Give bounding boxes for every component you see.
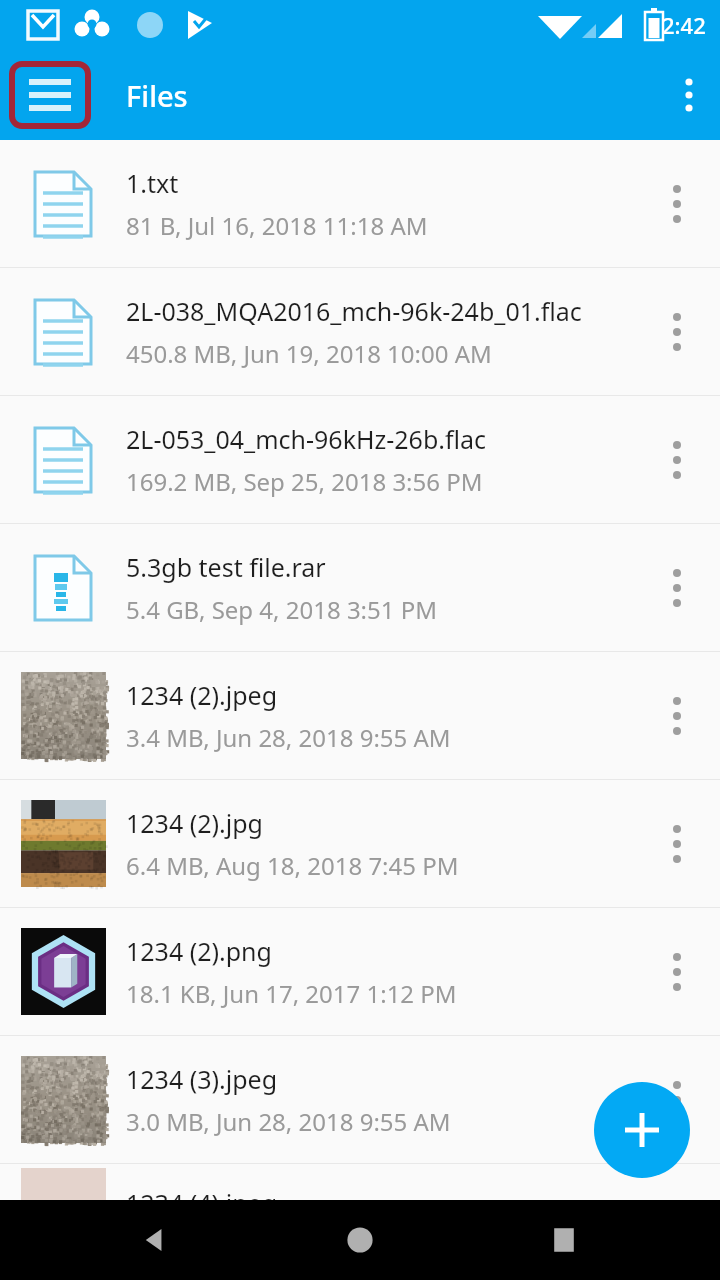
staticText: 2:42 bbox=[662, 10, 706, 40]
staticText: 5.4 GB, Sep 4, 2018 3:51 PM bbox=[126, 593, 438, 626]
staticText: 1234 (2).jpeg bbox=[126, 678, 278, 712]
button[interactable]: File options bbox=[634, 908, 720, 1035]
staticText: 5.3gb test file.rar bbox=[126, 550, 326, 584]
button[interactable]: 1234 (2).jpg bbox=[0, 780, 720, 907]
staticText: 1234 (2).jpg bbox=[126, 806, 263, 840]
button[interactable]: File options bbox=[634, 396, 720, 523]
button[interactable]: Recent apps bbox=[516, 1200, 612, 1280]
staticText: 450.8 MB, Jun 19, 2018 10:00 AM bbox=[126, 337, 492, 370]
button[interactable]: 1.txt bbox=[0, 140, 720, 267]
staticText: 169.2 MB, Sep 25, 2018 3:56 PM bbox=[126, 465, 483, 498]
staticText: Files bbox=[126, 76, 188, 115]
staticText: 2L-053_04_mch-96kHz-26b.flac bbox=[126, 422, 487, 456]
staticText: 1.txt bbox=[126, 166, 179, 200]
button[interactable]: File options bbox=[634, 524, 720, 651]
button[interactable]: File options bbox=[634, 140, 720, 267]
button[interactable]: File options bbox=[634, 1036, 720, 1163]
staticText: 81 B, Jul 16, 2018 11:18 AM bbox=[126, 209, 428, 242]
button[interactable]: Open navigation drawer bbox=[10, 62, 90, 128]
button[interactable]: More options bbox=[650, 50, 720, 140]
button[interactable]: Home bbox=[312, 1200, 408, 1280]
button[interactable]: Back bbox=[108, 1200, 204, 1280]
button[interactable]: 1234 (3).jpeg bbox=[0, 1036, 720, 1163]
staticText: 1234 (4).jpeg bbox=[126, 1186, 278, 1200]
staticText: 3.4 MB, Jun 28, 2018 9:55 AM bbox=[126, 721, 451, 754]
staticText: 3.0 MB, Jun 28, 2018 9:55 AM bbox=[126, 1105, 451, 1138]
button[interactable]: 5.3gb test file.rar bbox=[0, 524, 720, 651]
button[interactable]: Add bbox=[594, 1082, 690, 1178]
button[interactable]: 2L-038_MQA2016_mch-96k-24b_01.flac bbox=[0, 268, 720, 395]
button[interactable]: 2L-053_04_mch-96kHz-26b.flac bbox=[0, 396, 720, 523]
staticText: 6.4 MB, Aug 18, 2018 7:45 PM bbox=[126, 849, 459, 882]
button[interactable]: File options bbox=[634, 268, 720, 395]
staticText: 1234 (2).png bbox=[126, 934, 272, 968]
staticText: 1234 (3).jpeg bbox=[126, 1062, 278, 1096]
staticText: 18.1 KB, Jun 17, 2017 1:12 PM bbox=[126, 977, 457, 1010]
button[interactable]: 1234 (2).png bbox=[0, 908, 720, 1035]
button[interactable]: 1234 (2).jpeg bbox=[0, 652, 720, 779]
button[interactable]: File options bbox=[634, 780, 720, 907]
button[interactable]: File options bbox=[634, 652, 720, 779]
staticText: 2L-038_MQA2016_mch-96k-24b_01.flac bbox=[126, 294, 582, 328]
